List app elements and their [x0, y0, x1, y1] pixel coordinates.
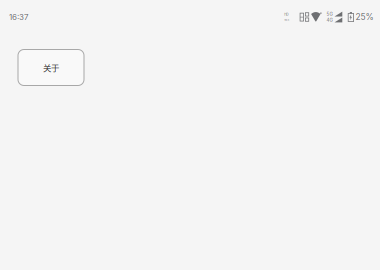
staticText: 4G	[326, 17, 332, 23]
staticText: 25%	[355, 12, 373, 22]
staticText: HD	[284, 13, 288, 17]
staticText: 16:37	[9, 12, 29, 22]
staticText: 5G	[326, 11, 332, 17]
staticText: VoLTE	[284, 19, 289, 21]
staticText: 关于	[43, 61, 59, 74]
button[interactable]: 关于	[18, 49, 84, 85]
